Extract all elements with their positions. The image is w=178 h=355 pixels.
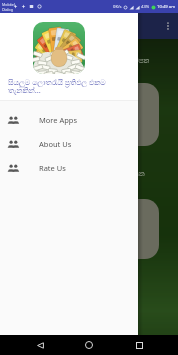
button[interactable]: About Us	[0, 132, 138, 156]
button[interactable]: More options	[158, 13, 178, 39]
button[interactable]	[101, 199, 159, 259]
button[interactable]	[101, 83, 159, 146]
staticText: Rate Us	[39, 163, 66, 173]
staticText: ගොවි සෙත	[110, 169, 145, 179]
button[interactable]: Home	[79, 335, 99, 355]
staticText: සියලුම ලොතරැයි ප්‍රතිඵල එකම තැනකින්...	[8, 77, 134, 95]
button[interactable]: Rate Us	[0, 156, 138, 180]
staticText: මහජන සම්පත	[106, 56, 150, 66]
staticText: Mobitel Dialog	[2, 2, 15, 12]
staticText: More Apps	[39, 115, 78, 125]
button[interactable]: Recents	[129, 335, 149, 355]
staticText: 0K/s	[113, 4, 122, 10]
staticText: 43%	[141, 4, 150, 10]
staticText: About Us	[39, 139, 72, 149]
button[interactable]: More Apps	[0, 108, 138, 132]
button[interactable]: Back	[30, 335, 50, 355]
staticText: 10:49 am	[157, 4, 176, 10]
